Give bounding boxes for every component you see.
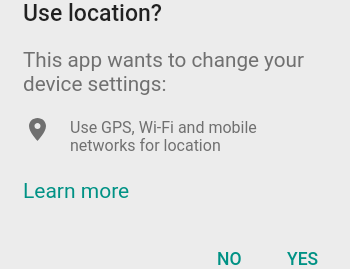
staticText: Use location?	[23, 0, 163, 27]
staticText: Learn more	[23, 179, 130, 204]
staticText: This app wants to change your device set…	[23, 48, 308, 96]
staticText: YES	[287, 249, 319, 269]
other: Location	[29, 118, 46, 141]
button[interactable]: YES	[267, 237, 339, 269]
staticText: Use GPS, Wi-Fi and mobile networks for l…	[70, 118, 262, 155]
button[interactable]: NO	[197, 237, 262, 269]
button[interactable]: Learn more	[21, 174, 132, 209]
staticText: NO	[217, 249, 242, 269]
